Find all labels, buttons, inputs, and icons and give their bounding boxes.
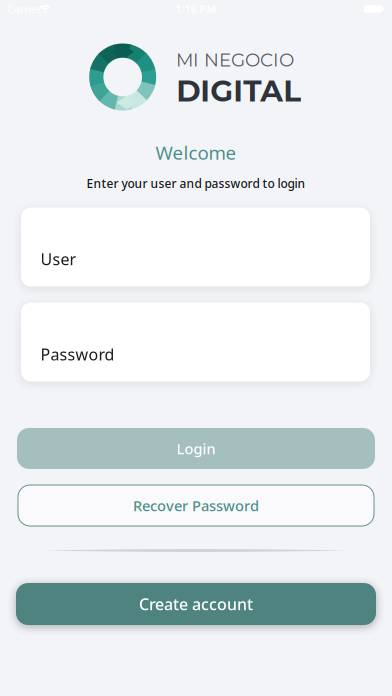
staticText: Welcome xyxy=(155,140,236,165)
staticText: User xyxy=(40,248,76,270)
staticText: Create account xyxy=(139,593,253,615)
button[interactable]: Create account xyxy=(16,583,376,625)
staticText: Password xyxy=(40,344,114,365)
staticText: Login xyxy=(176,439,215,458)
button[interactable]: Password xyxy=(21,302,370,381)
staticText: DIGITAL xyxy=(176,73,301,109)
button[interactable]: Login xyxy=(17,428,375,469)
button[interactable]: Recover Password xyxy=(18,485,374,526)
staticText: 1:16 PM xyxy=(175,2,216,16)
staticText: Recover Password xyxy=(133,496,259,515)
staticText: MI NEGOCIO xyxy=(176,49,294,71)
staticText: Carrier xyxy=(7,2,41,16)
button[interactable]: User xyxy=(21,207,370,286)
staticText: Enter your user and password to login xyxy=(86,175,305,191)
